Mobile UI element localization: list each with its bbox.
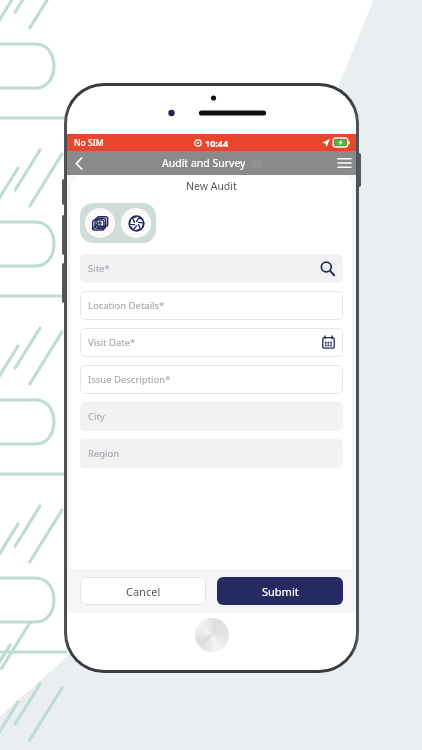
staticText: City	[88, 410, 105, 423]
button[interactable]: Pick image	[85, 208, 115, 238]
button[interactable]: City	[80, 402, 343, 431]
staticText: New Audit	[186, 179, 237, 193]
button[interactable]: Home	[195, 618, 229, 652]
button[interactable]: Back	[67, 151, 91, 175]
button[interactable]: Cancel	[80, 577, 206, 605]
button[interactable]: Location Details*	[80, 291, 343, 320]
staticText: No SIM	[74, 137, 104, 149]
button[interactable]: Take photo	[121, 208, 151, 238]
button[interactable]: Region	[80, 439, 343, 468]
staticText: Issue Description*	[88, 373, 171, 386]
staticText: Location Details*	[88, 299, 165, 312]
staticText: 30	[251, 157, 262, 169]
staticText: Cancel	[126, 584, 161, 599]
button[interactable]: Issue Description*	[80, 365, 343, 394]
staticText: Visit Date*	[88, 336, 136, 349]
button[interactable]: Site*	[80, 254, 343, 283]
staticText: Audit and Survey	[162, 156, 246, 170]
staticText: Region	[88, 447, 120, 460]
button[interactable]: Submit	[217, 577, 343, 605]
button[interactable]: Visit Date*	[80, 328, 343, 357]
button[interactable]: Menu	[332, 151, 356, 175]
staticText: 10:44	[205, 137, 229, 149]
staticText: Submit	[262, 584, 299, 599]
staticText: Site*	[88, 262, 110, 275]
